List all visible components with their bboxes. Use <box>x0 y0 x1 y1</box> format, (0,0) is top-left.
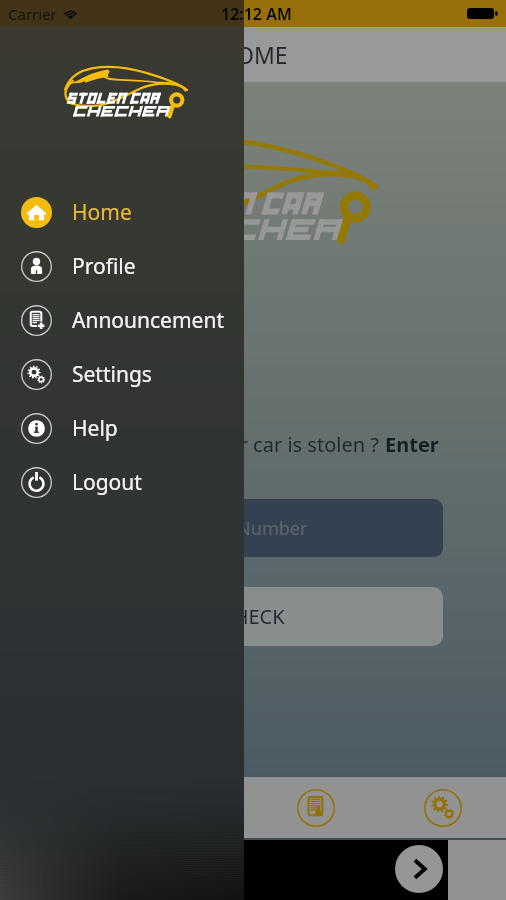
button[interactable]: CHECK <box>63 587 443 646</box>
staticText: Profile <box>72 252 136 281</box>
staticText: Enter <box>385 431 439 458</box>
button[interactable]: Next <box>395 845 443 893</box>
staticText: Settings <box>72 360 152 389</box>
staticText: Logout <box>72 468 142 497</box>
button[interactable]: Announcements <box>252 777 379 838</box>
button[interactable]: Help <box>0 401 244 455</box>
staticText: Announcement <box>72 306 224 335</box>
staticText: Home <box>72 198 132 227</box>
staticText: Check if your car is stolen ? <box>126 431 385 458</box>
staticText: Carrier <box>8 4 57 24</box>
button[interactable]: Profile <box>126 777 252 838</box>
staticText: CHECK <box>221 603 285 630</box>
button[interactable]: Enter Registration Number <box>63 499 443 557</box>
button[interactable]: Logout <box>0 455 244 509</box>
staticText: Help <box>72 414 118 443</box>
staticText: HOME <box>219 39 288 70</box>
button[interactable]: Settings <box>379 777 506 838</box>
button[interactable]: Profile <box>0 239 244 293</box>
button[interactable]: Home <box>0 185 244 239</box>
button[interactable]: Announcement <box>0 293 244 347</box>
staticText: 12:12 AM <box>221 3 292 25</box>
button[interactable]: Settings <box>0 347 244 401</box>
staticText: Enter Registration Number <box>80 516 308 541</box>
